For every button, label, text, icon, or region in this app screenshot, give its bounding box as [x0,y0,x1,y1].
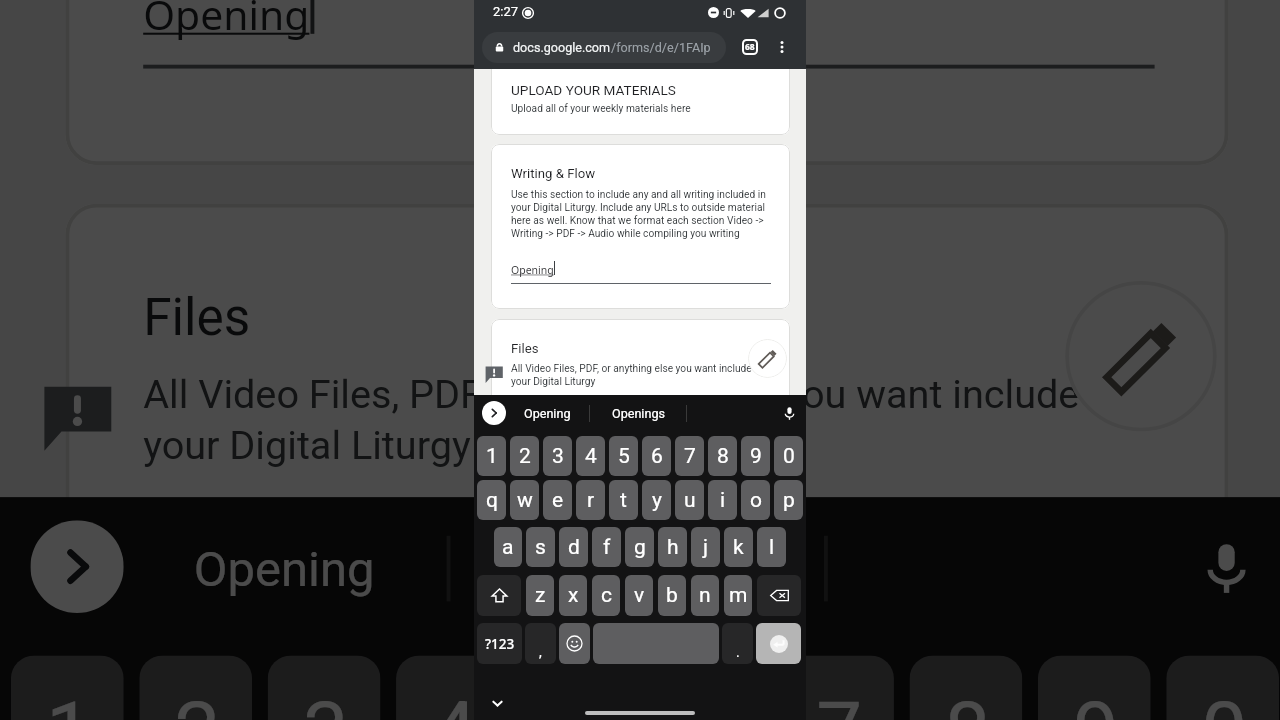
button[interactable]: 2 [510,436,539,476]
button[interactable]: . [722,623,753,664]
staticText: 3 [552,444,564,469]
button[interactable]: e [543,480,572,520]
button[interactable]: 0 [1166,655,1279,720]
button[interactable]: 1 [477,436,506,476]
staticText: u [684,488,696,513]
button[interactable]: y [642,480,671,520]
staticText: /forms/d/e/1FAIp [611,40,711,55]
staticText: n [699,583,711,608]
staticText: 4 [431,686,478,720]
button[interactable]: 3 [543,436,572,476]
button[interactable]: More options [772,37,792,57]
staticText: Files [511,341,539,356]
button[interactable]: Expand toolbar [30,520,124,613]
button[interactable]: p [774,480,803,520]
staticText: Use this section to include any and all … [511,189,769,240]
staticText: o [750,488,762,513]
button[interactable]: Edit [1065,281,1217,431]
button[interactable]: Hide keyboard [486,692,508,714]
button[interactable]: Expand toolbar [482,401,506,425]
button[interactable]: b [658,575,686,616]
staticText: s [535,535,546,560]
staticText: 1 [46,686,93,720]
button[interactable]: Openings [590,395,686,432]
staticText: . [736,644,740,660]
button[interactable]: z [526,575,554,616]
staticText: Opening [143,0,310,42]
button[interactable]: 2 [139,655,252,720]
button[interactable]: 0 [774,436,803,476]
button[interactable]: n [691,575,719,616]
staticText: 5 [559,686,606,720]
button[interactable]: h [658,527,687,567]
button[interactable]: docs.google.com [482,32,726,63]
staticText: 2 [519,444,531,469]
button[interactable]: Tabs [740,37,760,57]
staticText: Openings [612,406,665,421]
button[interactable]: a [494,527,522,567]
button[interactable]: j [691,527,720,567]
staticText: b [666,583,678,608]
button[interactable]: 8 [909,655,1022,720]
staticText: Openings [536,540,742,597]
button[interactable]: 5 [609,436,638,476]
staticText: Upload all of your weekly materials here [511,103,691,115]
staticText: , [539,644,542,660]
button[interactable]: o [741,480,770,520]
staticText: t [620,488,627,513]
button[interactable]: , [525,623,556,664]
button[interactable]: Voice input [1170,513,1279,621]
button[interactable]: k [724,527,753,567]
button[interactable]: 6 [653,655,766,720]
button[interactable]: Edit [748,339,787,378]
button[interactable]: g [625,527,654,567]
button[interactable]: x [559,575,587,616]
button[interactable]: c [592,575,620,616]
staticText: c [601,583,612,608]
staticText: f [603,535,611,560]
button[interactable]: 5 [524,655,637,720]
button[interactable]: i [708,480,737,520]
button[interactable]: f [592,527,621,567]
button[interactable]: q [477,480,506,520]
staticText: 5 [618,444,630,469]
button[interactable]: 9 [741,436,770,476]
button[interactable]: v [625,575,653,616]
button[interactable]: u [675,480,704,520]
button[interactable]: 9 [1038,655,1151,720]
button[interactable]: 7 [675,436,704,476]
staticText: 9 [750,444,762,469]
button[interactable]: Opening [124,497,447,640]
button[interactable]: ?123 [477,623,522,664]
button[interactable]: d [559,527,588,567]
button[interactable]: 6 [642,436,671,476]
button[interactable]: w [510,480,539,520]
button[interactable]: Opening [506,395,589,432]
button[interactable]: Voice input [775,399,803,427]
button[interactable]: Openings [450,497,824,640]
button[interactable]: l [757,527,786,567]
button[interactable]: Shift [477,575,521,616]
button[interactable]: r [576,480,605,520]
button[interactable]: 8 [708,436,737,476]
button[interactable]: 7 [781,655,894,720]
button[interactable]: 1 [11,655,124,720]
staticText: p [783,488,795,513]
button[interactable]: Emoji [559,623,590,664]
staticText: r [587,488,595,513]
staticText: l [769,535,775,560]
button[interactable]: t [609,480,638,520]
staticText: 8 [944,686,991,720]
staticText: Writing & Flow [511,166,596,181]
button[interactable]: m [724,575,752,616]
button[interactable]: Space [593,623,719,664]
staticText: w [517,488,533,513]
staticText: a [502,535,514,560]
staticText: 68 [745,41,755,53]
button[interactable]: 4 [576,436,605,476]
button[interactable]: Backspace [757,575,801,616]
button[interactable]: Enter [756,623,801,664]
button[interactable]: 3 [268,655,380,720]
button[interactable]: s [526,527,555,567]
button[interactable]: 4 [396,655,509,720]
